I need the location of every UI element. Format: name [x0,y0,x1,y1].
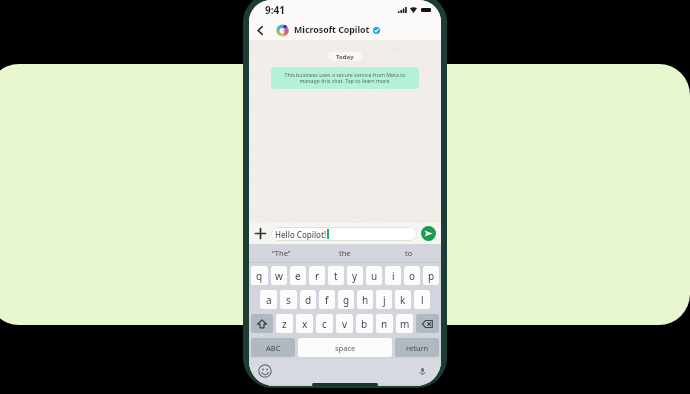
staticText: Today [336,53,354,61]
staticText: to [405,248,413,258]
staticText: b [361,317,368,331]
staticText: d [305,293,312,307]
button[interactable]: r [309,266,325,285]
button[interactable]: v [336,314,353,333]
staticText: g [343,293,350,307]
staticText: i [392,269,395,283]
button[interactable]: q [251,266,268,285]
button[interactable]: c [316,314,333,333]
staticText: Microsoft Copilot [294,24,370,36]
button[interactable]: g [338,290,354,309]
staticText: 9:41 [265,3,285,17]
staticText: “The” [272,248,291,258]
button[interactable]: k [395,290,411,309]
staticText: f [325,293,329,307]
staticText: l [421,293,424,307]
button[interactable]: Emoji [258,364,272,378]
button[interactable]: “The” [249,244,313,262]
staticText: s [286,293,291,307]
button[interactable]: b [356,314,373,333]
button[interactable]: l [414,290,430,309]
staticText: z [282,317,287,331]
staticText: v [342,317,348,331]
staticText: w [275,269,283,283]
staticText: a [266,293,272,307]
staticText: u [371,269,378,283]
staticText: x [302,317,308,331]
button[interactable]: u [366,266,382,285]
button[interactable]: Backspace [416,314,439,333]
button[interactable]: x [296,314,313,333]
button[interactable]: Send [421,226,436,241]
button[interactable]: j [376,290,392,309]
button[interactable]: o [404,266,420,285]
button[interactable]: p [423,266,439,285]
button[interactable]: Shift [251,314,273,333]
button[interactable]: s [280,290,297,309]
staticText: y [352,269,358,283]
button[interactable]: Attach [253,226,268,241]
button[interactable]: z [276,314,293,333]
button[interactable]: space [298,338,392,357]
button[interactable]: h [357,290,373,309]
staticText: t [334,269,338,283]
staticText: n [381,317,388,331]
staticText: Hello Copilot! [275,229,327,240]
button[interactable]: m [396,314,413,333]
button[interactable]: i [385,266,401,285]
button[interactable]: Microphone [418,367,427,376]
button[interactable]: to [377,244,441,262]
staticText: j [383,293,386,307]
staticText: space [335,343,356,353]
staticText: r [315,269,320,283]
button[interactable]: y [347,266,363,285]
button[interactable]: t [328,266,344,285]
staticText: the [339,248,351,258]
button[interactable]: n [376,314,393,333]
staticText: This business uses a secure service from… [275,71,415,85]
staticText: m [400,317,410,331]
button[interactable]: d [300,290,316,309]
staticText: c [322,317,327,331]
staticText: return [406,343,429,353]
button[interactable]: return [395,338,439,357]
staticText: e [295,269,301,283]
button[interactable]: Back [252,22,268,38]
button[interactable]: w [271,266,287,285]
staticText: h [362,293,369,307]
button[interactable]: e [290,266,306,285]
button[interactable]: the [313,244,377,262]
staticText: k [400,293,406,307]
button[interactable]: Hello Copilot! [271,227,417,241]
staticText: o [409,269,416,283]
button[interactable]: ABC [251,338,295,357]
staticText: p [428,269,435,283]
staticText: q [256,269,263,283]
button[interactable]: f [319,290,335,309]
staticText: ABC [266,343,281,353]
button[interactable]: a [260,290,277,309]
button[interactable]: This business uses a secure service from… [271,67,419,89]
